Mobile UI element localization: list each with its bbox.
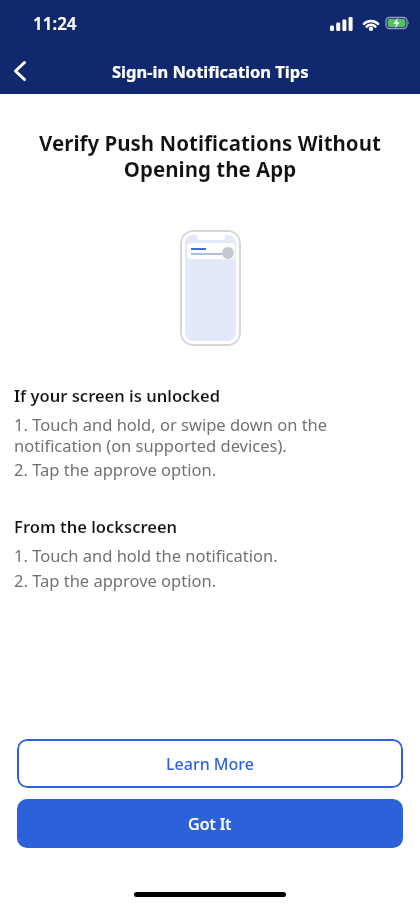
button[interactable]: Learn More (17, 739, 403, 788)
staticText: Verify Push Notifications Without Openin… (20, 129, 400, 183)
button[interactable]: Got It (17, 799, 403, 848)
staticText: Got It (188, 813, 232, 835)
staticText: 2. Tap the approve option. (14, 569, 217, 591)
staticText: Sign-in Notification Tips (112, 60, 309, 82)
staticText: From the lockscreen (14, 515, 178, 537)
button[interactable] (2, 53, 38, 89)
staticText: 1. Touch and hold, or swipe down on the … (14, 413, 328, 457)
staticText: 1. Touch and hold the notification. (14, 544, 278, 566)
staticText: 11:24 (33, 12, 77, 35)
staticText: 2. Tap the approve option. (14, 458, 217, 480)
staticText: Learn More (166, 753, 254, 775)
staticText: If your screen is unlocked (14, 384, 221, 406)
